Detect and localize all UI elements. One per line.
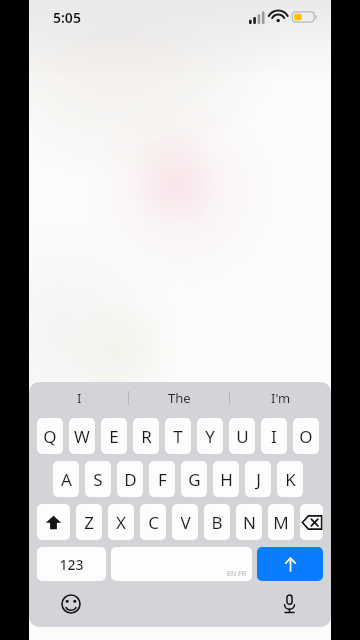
staticText: V [180,511,191,534]
staticText: 123 [59,555,84,574]
staticText: I [271,425,277,448]
button[interactable]: I [261,418,287,454]
button[interactable]: V [172,504,198,540]
staticText: O [299,425,313,448]
button[interactable]: X [108,504,134,540]
staticText: The [168,389,191,407]
button[interactable]: C [140,504,166,540]
button[interactable]: 123 [37,547,106,581]
staticText: I'm [271,389,291,407]
staticText: K [285,468,296,491]
staticText: D [124,468,137,491]
staticText: W [74,425,90,448]
button[interactable]: O [293,418,319,454]
button[interactable]: B [204,504,230,540]
staticText: Q [43,425,57,448]
button[interactable]: Q [37,418,63,454]
button[interactable]: Dictation [273,588,305,620]
staticText: R [141,425,152,448]
button[interactable]: Space [111,547,252,581]
button[interactable]: Shift [37,504,70,540]
button[interactable]: W [69,418,95,454]
button[interactable]: J [245,461,271,497]
staticText: C [148,511,159,534]
staticText: EN FR [227,569,247,579]
button[interactable]: I'm [230,382,331,414]
button[interactable]: T [165,418,191,454]
staticText: A [61,468,72,491]
button[interactable]: K [277,461,303,497]
button[interactable]: Emoji [55,588,87,620]
staticText: G [188,468,201,491]
staticText: T [173,425,183,448]
staticText: F [158,468,167,491]
staticText: 5:05 [53,8,81,27]
button[interactable]: G [181,461,207,497]
button[interactable]: Z [76,504,102,540]
staticText: X [116,511,126,534]
staticText: Y [205,425,215,448]
staticText: M [273,511,289,534]
button[interactable]: D [117,461,143,497]
button[interactable]: A [53,461,79,497]
staticText: Z [84,511,94,534]
button[interactable]: M [268,504,294,540]
button[interactable]: I [29,382,129,414]
button[interactable]: U [229,418,255,454]
staticText: U [236,425,249,448]
button[interactable]: N [236,504,262,540]
staticText: N [243,511,256,534]
staticText: H [220,468,233,491]
staticText: B [211,511,223,534]
staticText: I [77,389,82,407]
button[interactable]: E [101,418,127,454]
staticText: S [93,468,103,491]
button[interactable]: R [133,418,159,454]
staticText: E [109,425,119,448]
button[interactable]: Y [197,418,223,454]
button[interactable]: S [85,461,111,497]
button[interactable]: F [149,461,175,497]
button[interactable]: The [129,382,230,414]
button[interactable]: H [213,461,239,497]
staticText: J [256,468,261,491]
button[interactable]: Send [257,547,323,581]
button[interactable]: Backspace [300,504,323,540]
